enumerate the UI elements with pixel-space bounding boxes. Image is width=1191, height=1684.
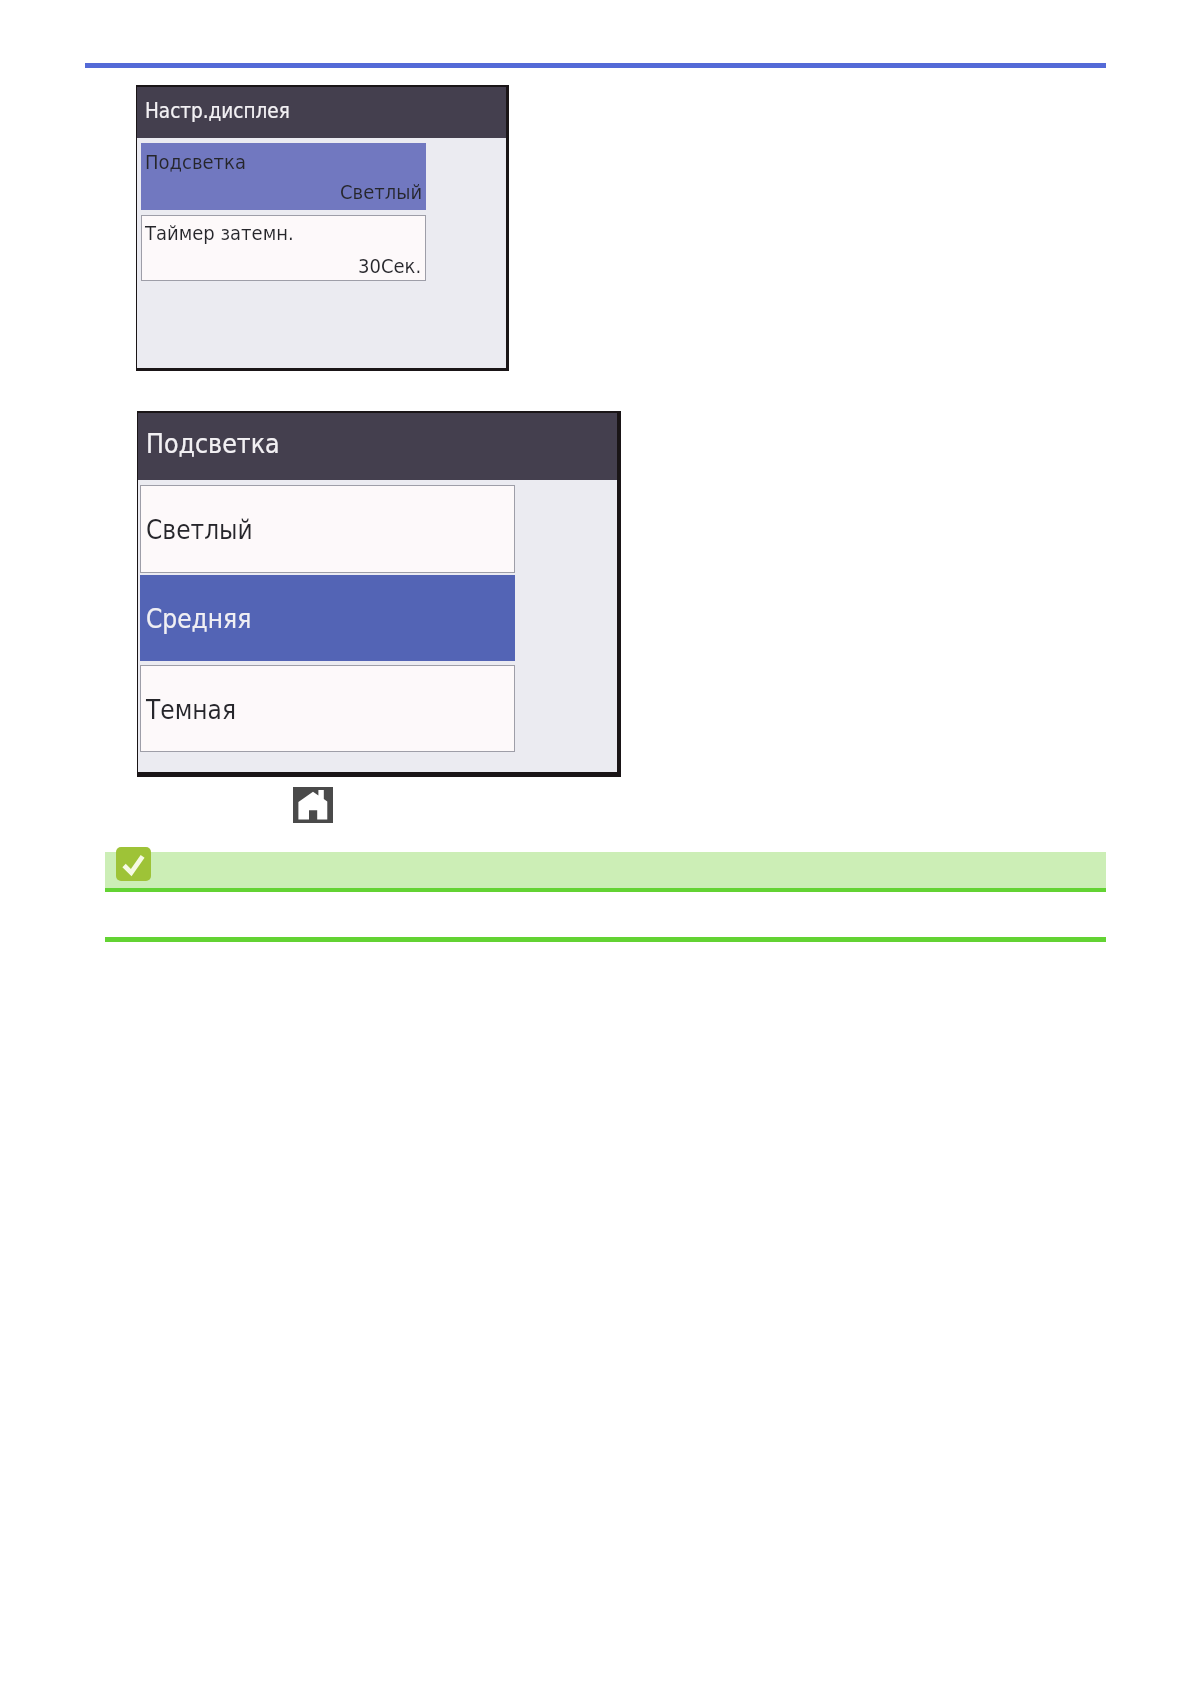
button[interactable]: Таймер затемн. [141, 215, 426, 281]
staticText: Настр.дисплея [145, 99, 290, 123]
staticText: Темная [146, 695, 237, 725]
button[interactable]: Подсветка [141, 143, 426, 210]
staticText: 30Сек. [358, 254, 422, 277]
staticText: Подсветка [146, 428, 280, 459]
button[interactable]: Home [293, 787, 333, 823]
staticText: Светлый [146, 515, 253, 545]
staticText: Светлый [340, 180, 423, 203]
button[interactable]: Темная [140, 665, 515, 752]
staticText: Средняя [146, 604, 252, 634]
staticText: Подсветка [145, 150, 246, 173]
button[interactable]: Светлый [140, 485, 515, 573]
button[interactable]: Средняя [140, 575, 515, 661]
staticText: Таймер затемн. [145, 221, 294, 244]
